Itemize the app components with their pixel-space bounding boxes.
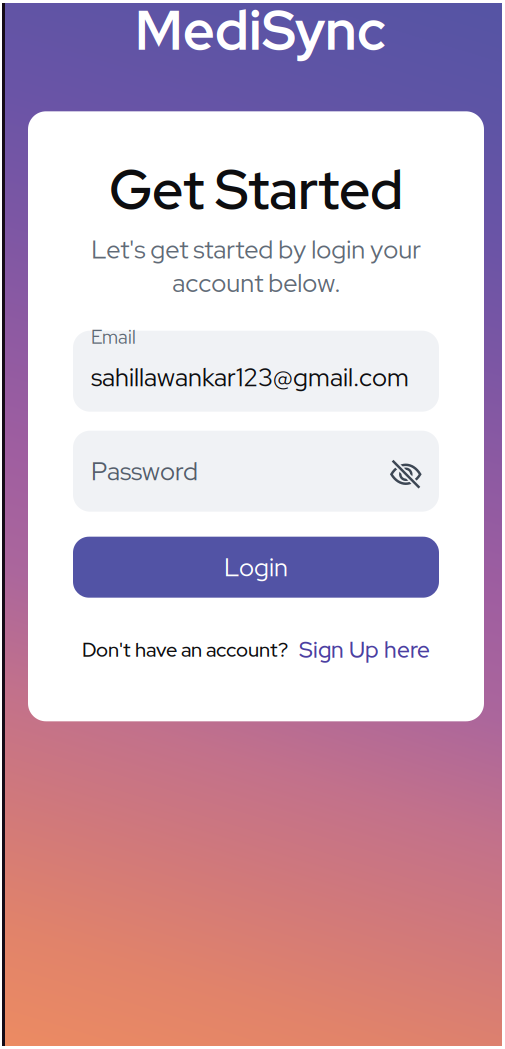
button[interactable]: Login [73, 537, 439, 598]
staticText: Sign Up here [299, 635, 430, 665]
staticText: Let's get started by login your account … [91, 233, 421, 300]
staticText: Get Started [109, 153, 403, 226]
button[interactable]: Sign Up here [299, 635, 430, 665]
staticText: Email [91, 325, 136, 349]
staticText: Login [224, 550, 288, 584]
staticText: Password [91, 454, 198, 488]
button[interactable]: Show password [383, 448, 429, 494]
staticText: MediSync [135, 0, 386, 66]
staticText: Don't have an account? [82, 636, 288, 663]
staticText: sahillawankar123@gmail.com [91, 360, 409, 394]
